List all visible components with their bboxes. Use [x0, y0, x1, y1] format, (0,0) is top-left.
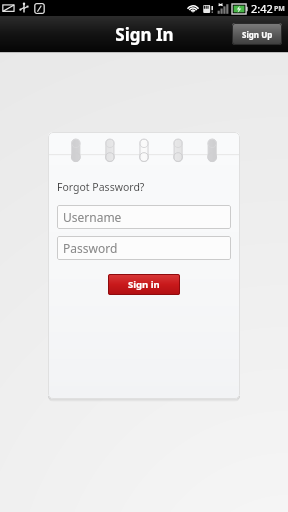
staticText: Username — [63, 209, 122, 225]
staticText: PM — [274, 4, 285, 14]
staticText: Sign Up — [242, 29, 273, 40]
staticText: Sign In — [115, 23, 174, 46]
staticText: Forgot Password? — [57, 180, 145, 194]
button[interactable]: Password — [57, 236, 231, 260]
button[interactable]: Sign Up — [232, 23, 282, 45]
staticText: Sign in — [128, 278, 160, 291]
staticText: 2:42 — [251, 1, 273, 16]
staticText: Password — [63, 240, 118, 256]
button[interactable]: Sign in — [108, 274, 180, 295]
button[interactable]: Forgot Password? — [57, 180, 145, 194]
button[interactable]: Username — [57, 205, 231, 229]
